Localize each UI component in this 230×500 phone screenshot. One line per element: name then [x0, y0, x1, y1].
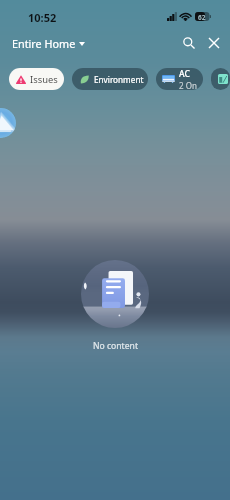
staticText: 2 On: [179, 80, 197, 90]
button[interactable]: AC: [156, 68, 203, 90]
staticText: Entire Home: [12, 36, 76, 51]
staticText: 10:52: [28, 10, 57, 25]
staticText: 62: [198, 13, 206, 22]
button[interactable]: Environment: [72, 68, 148, 90]
staticText: Environment: [94, 74, 144, 85]
button[interactable]: Entire Home: [9, 33, 88, 54]
button[interactable]: Lights: [211, 68, 230, 90]
button[interactable]: Search: [176, 30, 202, 56]
staticText: No content: [93, 340, 138, 352]
button[interactable]: Weather: [0, 108, 16, 138]
button[interactable]: Close: [201, 30, 227, 56]
button[interactable]: Issues: [9, 68, 64, 90]
staticText: Issues: [30, 73, 58, 86]
staticText: AC: [179, 68, 190, 80]
